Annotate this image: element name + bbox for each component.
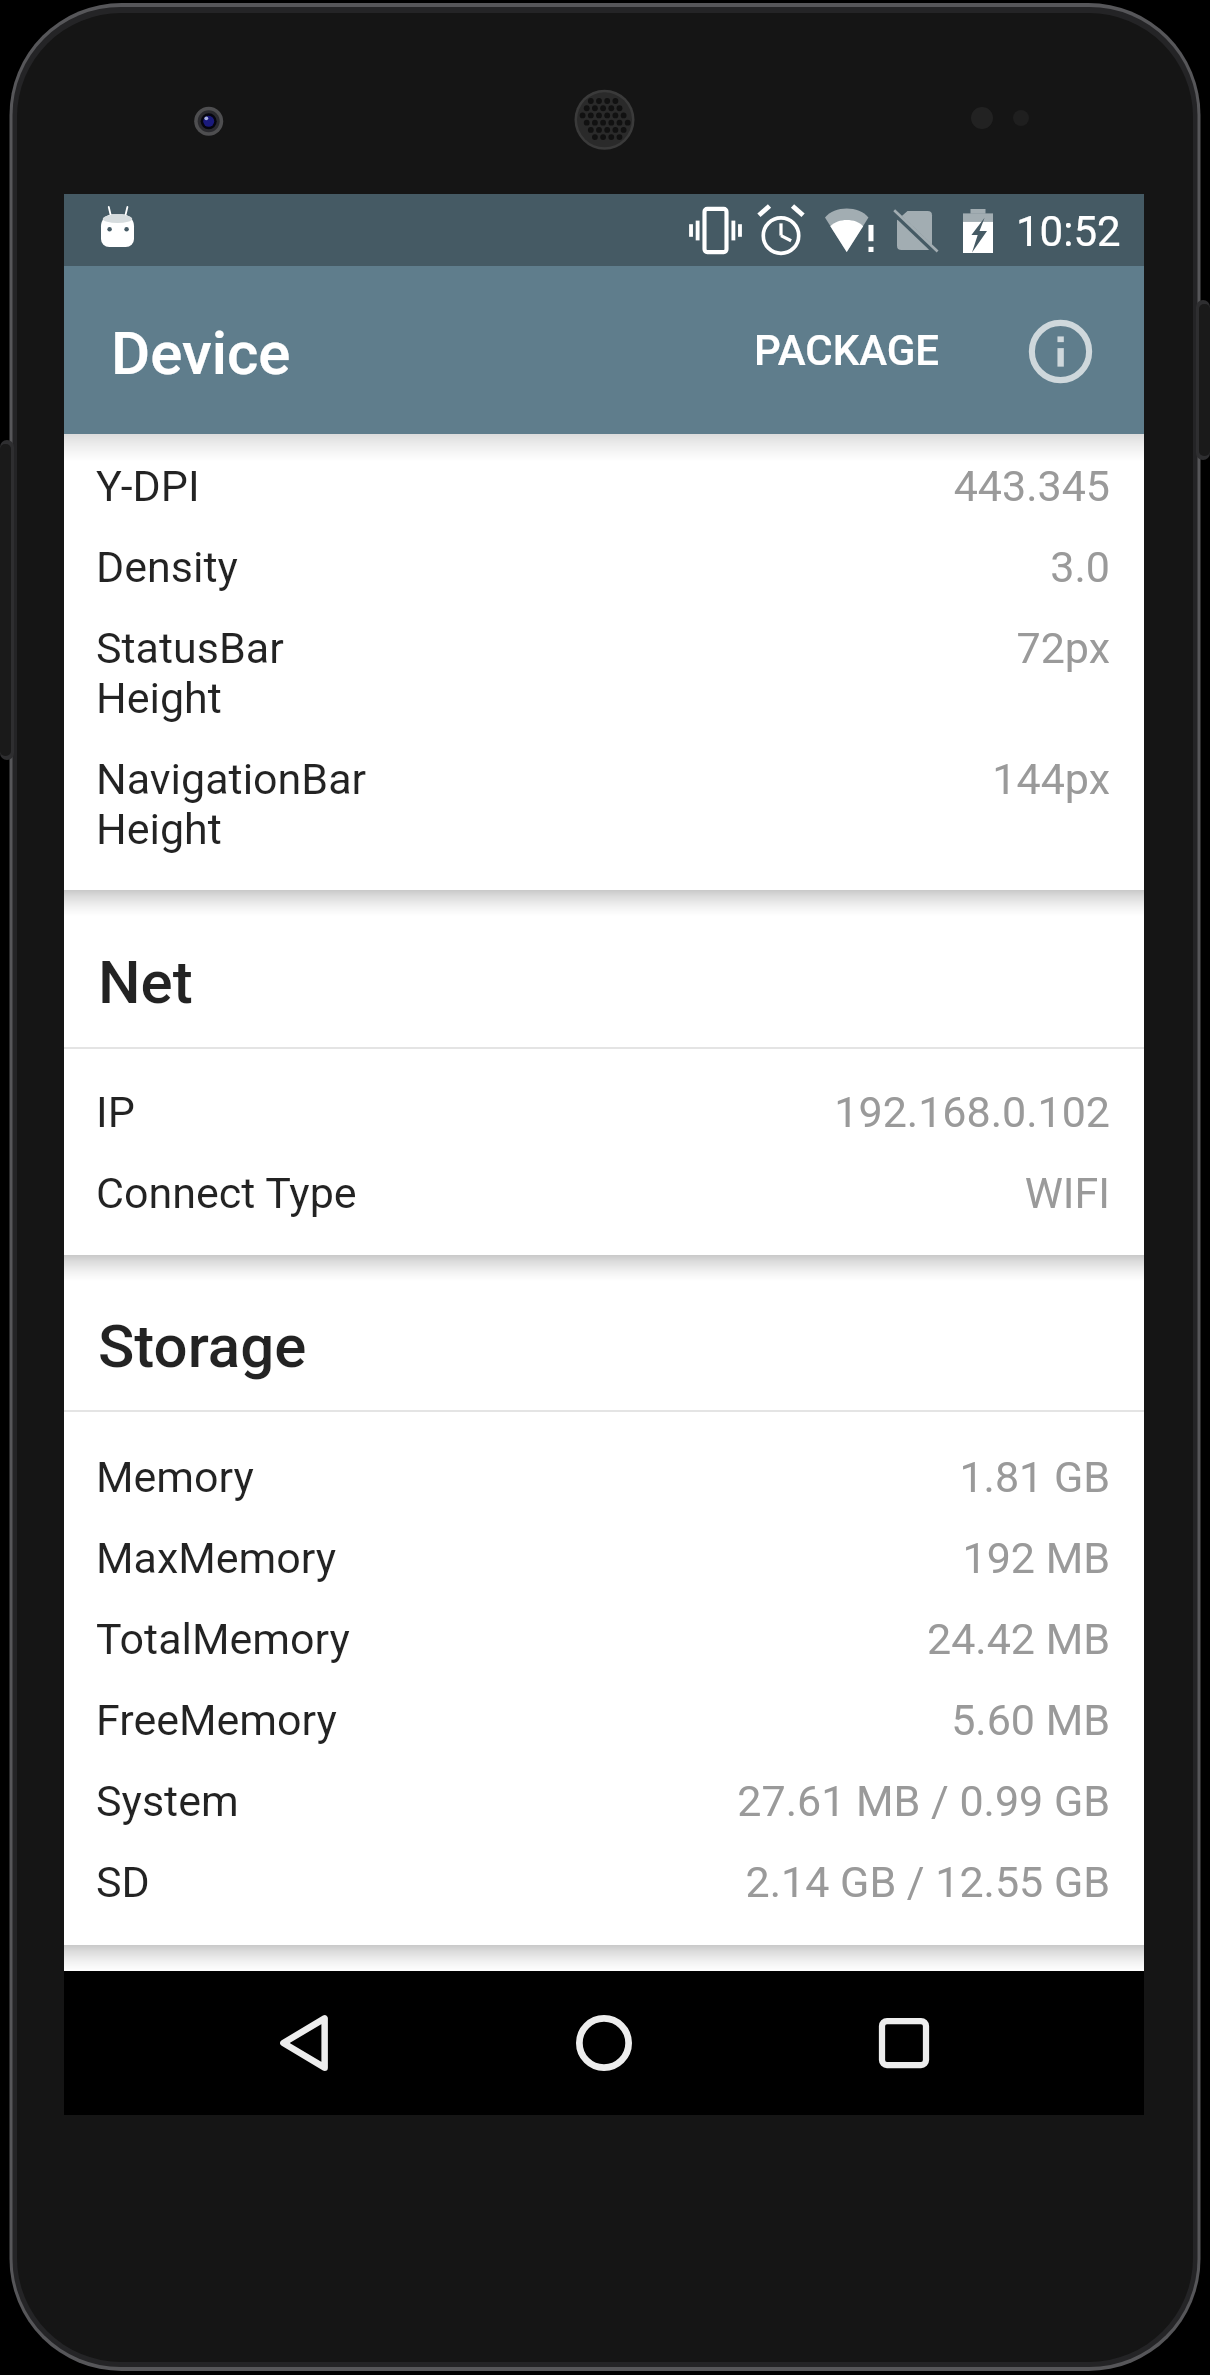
- button[interactable]: MaxMemory: [64, 1533, 1144, 1614]
- staticText: 24.42 MB: [926, 1614, 1110, 1664]
- staticText: Connect Type: [96, 1168, 1024, 1218]
- staticText: Y-DPI: [96, 461, 953, 511]
- staticText: TotalMemory: [96, 1614, 926, 1664]
- button[interactable]: StatusBar Height: [64, 623, 1144, 754]
- button[interactable]: Info: [976, 267, 1144, 435]
- staticText: 1.81 GB: [959, 1452, 1110, 1502]
- staticText: MaxMemory: [96, 1533, 962, 1583]
- button[interactable]: PACKAGE: [721, 266, 973, 434]
- staticText: 72px: [1016, 623, 1110, 673]
- button[interactable]: Memory: [64, 1452, 1144, 1533]
- staticText: 2.14 GB / 12.55 GB: [745, 1857, 1110, 1907]
- staticText: 443.345: [953, 461, 1110, 511]
- staticText: Storage: [98, 1311, 307, 1381]
- button[interactable]: TotalMemory: [64, 1614, 1144, 1695]
- staticText: 3.0: [1050, 542, 1110, 592]
- staticText: 10:52: [1016, 207, 1121, 256]
- button[interactable]: SD: [64, 1857, 1144, 1938]
- button[interactable]: Recents: [832, 1971, 976, 2115]
- button[interactable]: System: [64, 1776, 1144, 1857]
- staticText: WIFI: [1024, 1168, 1110, 1218]
- button[interactable]: Back: [232, 1971, 376, 2115]
- staticText: SD: [96, 1857, 745, 1907]
- staticText: Memory: [96, 1452, 959, 1502]
- staticText: FreeMemory: [96, 1695, 951, 1745]
- staticText: System: [96, 1776, 737, 1826]
- staticText: Device: [111, 318, 291, 388]
- staticText: Density: [96, 542, 1050, 592]
- button[interactable]: IP: [64, 1087, 1144, 1168]
- button[interactable]: FreeMemory: [64, 1695, 1144, 1776]
- staticText: IP: [96, 1087, 834, 1137]
- staticText: 144px: [992, 754, 1110, 804]
- staticText: 192.168.0.102: [834, 1087, 1110, 1137]
- button[interactable]: Connect Type: [64, 1168, 1144, 1249]
- button[interactable]: Y-DPI: [64, 461, 1144, 542]
- staticText: 5.60 MB: [951, 1695, 1110, 1745]
- button[interactable]: Density: [64, 542, 1144, 623]
- staticText: 192 MB: [962, 1533, 1110, 1583]
- staticText: PACKAGE: [754, 326, 940, 375]
- staticText: Net: [98, 947, 193, 1017]
- staticText: 27.61 MB / 0.99 GB: [737, 1776, 1110, 1826]
- staticText: NavigationBar Height: [96, 754, 992, 854]
- staticText: StatusBar Height: [96, 623, 1016, 723]
- button[interactable]: NavigationBar Height: [64, 754, 1144, 885]
- button[interactable]: Home: [532, 1971, 676, 2115]
